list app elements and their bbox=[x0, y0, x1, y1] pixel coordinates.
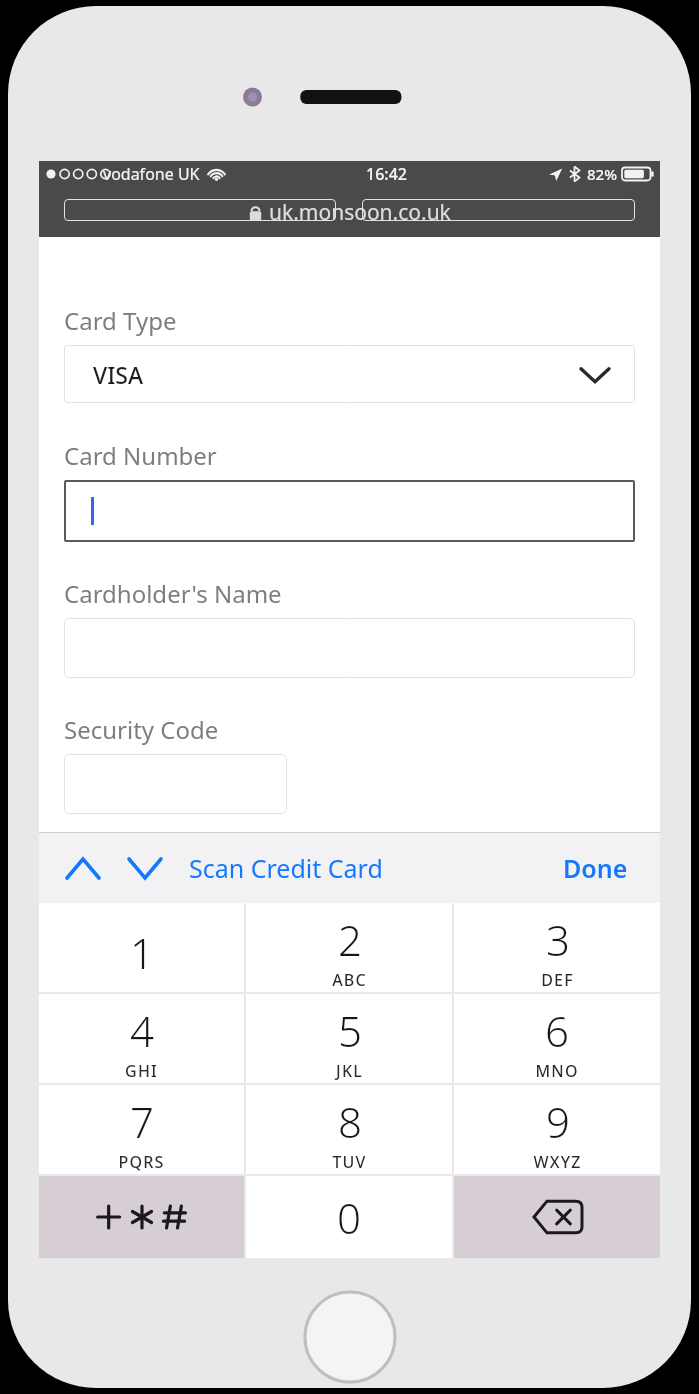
button[interactable] bbox=[64, 199, 336, 221]
button[interactable] bbox=[64, 480, 635, 542]
staticText: 8 bbox=[338, 1093, 362, 1150]
button[interactable]: Delete bbox=[454, 1176, 660, 1258]
staticText: Scan Credit Card bbox=[189, 851, 383, 885]
staticText: WXYZ bbox=[533, 1151, 582, 1173]
button[interactable]: 0 bbox=[246, 1176, 452, 1258]
staticText: 2 bbox=[338, 911, 362, 968]
button[interactable] bbox=[362, 199, 635, 221]
staticText: vodafone UK bbox=[103, 163, 200, 185]
button[interactable]: 7 bbox=[39, 1085, 244, 1174]
staticText: 9 bbox=[546, 1093, 570, 1150]
staticText: Card Number bbox=[64, 439, 217, 472]
button[interactable]: 8 bbox=[246, 1085, 452, 1174]
button[interactable]: 1 bbox=[39, 903, 244, 992]
staticText: Done bbox=[563, 851, 628, 885]
button[interactable] bbox=[64, 754, 287, 814]
staticText: VISA bbox=[93, 359, 144, 390]
staticText: TUV bbox=[332, 1151, 367, 1173]
staticText: Security Code bbox=[64, 713, 219, 746]
button[interactable]: 2 bbox=[246, 903, 452, 992]
staticText: 4 bbox=[130, 1002, 154, 1059]
button[interactable]: 3 bbox=[454, 903, 660, 992]
staticText: uk.monsoon.co.uk bbox=[269, 198, 451, 227]
button[interactable]: Home bbox=[302, 1289, 398, 1385]
staticText: Card Type bbox=[64, 304, 177, 337]
button[interactable]: Previous field bbox=[57, 842, 109, 894]
button[interactable]: Next field bbox=[119, 842, 171, 894]
staticText: MNO bbox=[535, 1060, 579, 1082]
staticText: 1 bbox=[130, 924, 154, 981]
button[interactable]: 4 bbox=[39, 994, 244, 1083]
button[interactable]: Symbols plus star hash bbox=[39, 1176, 244, 1258]
button[interactable]: uk.monsoon.co.uk bbox=[39, 187, 660, 237]
staticText: 7 bbox=[130, 1093, 154, 1150]
button[interactable] bbox=[64, 618, 635, 678]
staticText: JKL bbox=[336, 1060, 363, 1082]
staticText: 5 bbox=[338, 1002, 362, 1059]
button[interactable]: 9 bbox=[454, 1085, 660, 1174]
staticText: 16:42 bbox=[366, 163, 407, 185]
button[interactable]: 5 bbox=[246, 994, 452, 1083]
button[interactable]: Done bbox=[553, 843, 638, 893]
button[interactable]: 6 bbox=[454, 994, 660, 1083]
button[interactable]: VISA bbox=[64, 345, 635, 403]
staticText: ABC bbox=[332, 969, 367, 991]
staticText: DEF bbox=[541, 969, 574, 991]
staticText: 82% bbox=[587, 164, 617, 184]
staticText: GHI bbox=[125, 1060, 158, 1082]
staticText: 3 bbox=[546, 911, 570, 968]
staticText: 0 bbox=[337, 1189, 361, 1246]
staticText: Cardholder's Name bbox=[64, 577, 282, 610]
staticText: 6 bbox=[545, 1002, 569, 1059]
staticText: PQRS bbox=[118, 1151, 165, 1173]
button[interactable]: Scan Credit Card bbox=[185, 843, 387, 893]
